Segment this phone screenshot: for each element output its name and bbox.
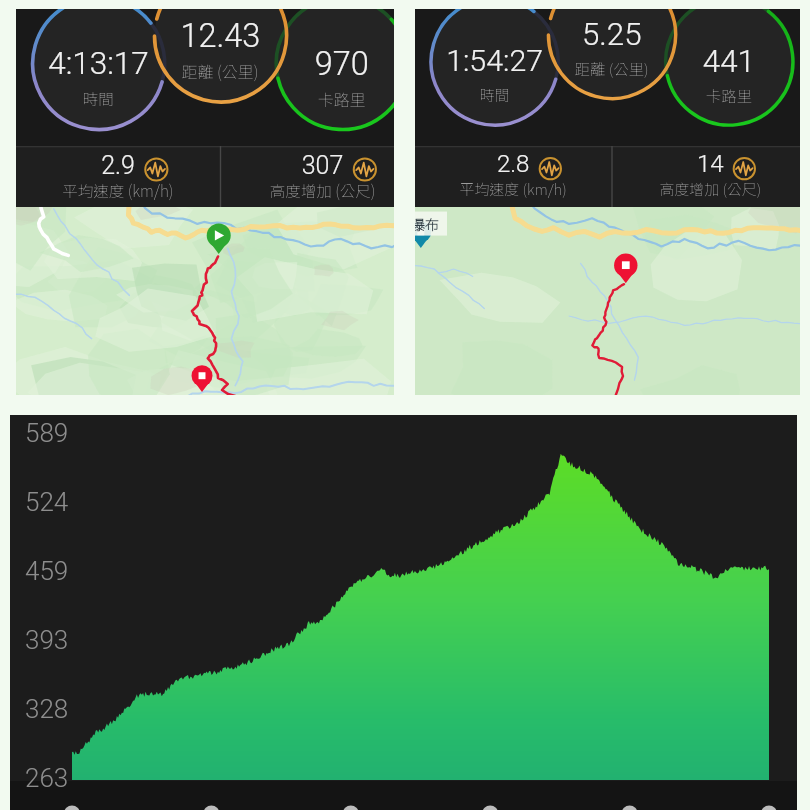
button[interactable] xyxy=(415,9,800,395)
button[interactable] xyxy=(16,9,394,395)
button[interactable] xyxy=(10,415,797,810)
